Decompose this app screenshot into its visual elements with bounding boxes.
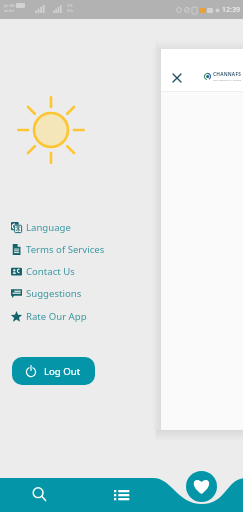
staticText: Language <box>26 221 71 234</box>
staticText: Jio 4G <box>4 3 15 8</box>
button[interactable]: Close <box>169 70 185 86</box>
button[interactable]: Suggestions <box>8 282 118 304</box>
staticText: airtel <box>4 8 14 13</box>
staticText: CHANNAFS <box>213 71 242 78</box>
button[interactable]: Log Out <box>12 357 95 385</box>
staticText: THE WORLD IS YOURS <box>213 78 242 81</box>
button[interactable]: Favorites <box>186 471 217 502</box>
staticText: K/s <box>67 8 73 13</box>
staticText: Rate Our App <box>26 310 87 323</box>
button[interactable]: Terms of Services <box>8 238 118 260</box>
button[interactable]: List <box>114 489 130 501</box>
staticText: 7.5 <box>67 3 73 8</box>
button[interactable]: Search <box>30 485 50 505</box>
staticText: Suggestions <box>26 287 82 300</box>
staticText: 12:39 <box>222 5 240 15</box>
staticText: Terms of Services <box>26 243 105 256</box>
button[interactable]: Rate Our App <box>8 305 118 327</box>
staticText: Log Out <box>44 365 81 378</box>
staticText: Contact Us <box>26 265 75 278</box>
button[interactable]: Language <box>8 216 118 238</box>
button[interactable]: Contact Us <box>8 260 118 282</box>
